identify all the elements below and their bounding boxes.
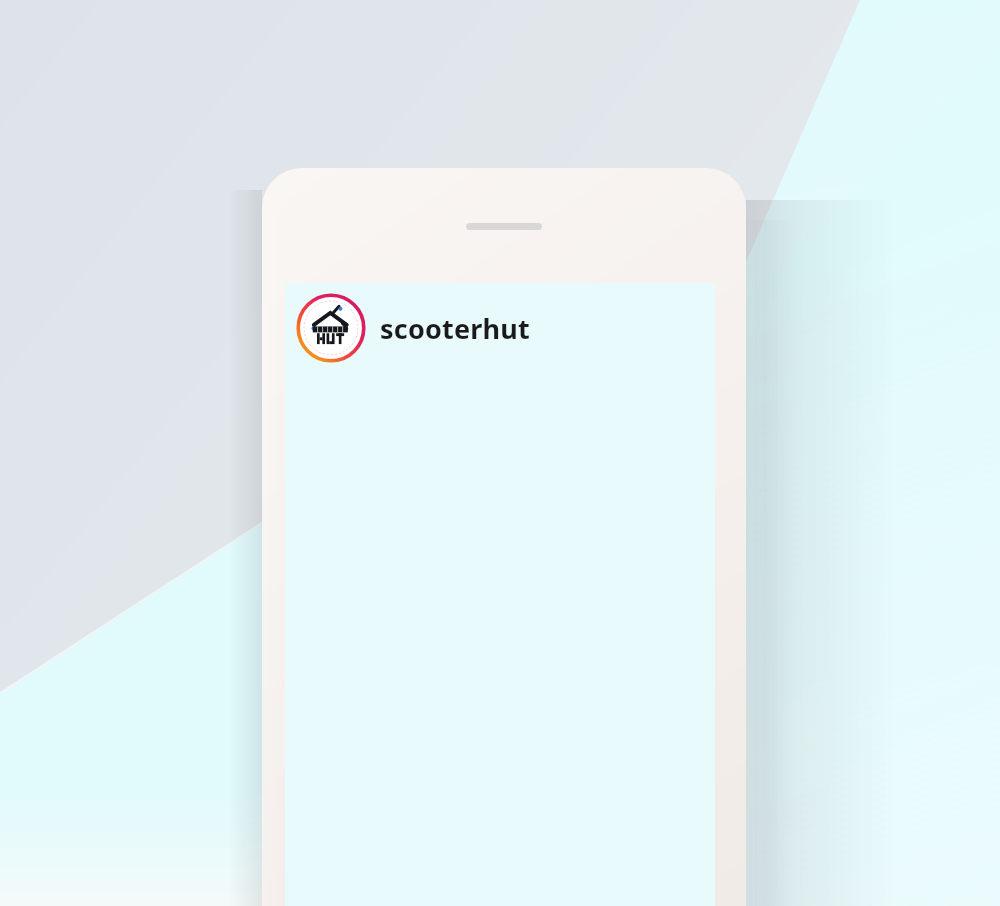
staticText: scooterhut <box>380 310 530 347</box>
button[interactable]: scooterhut brand <box>296 293 530 363</box>
